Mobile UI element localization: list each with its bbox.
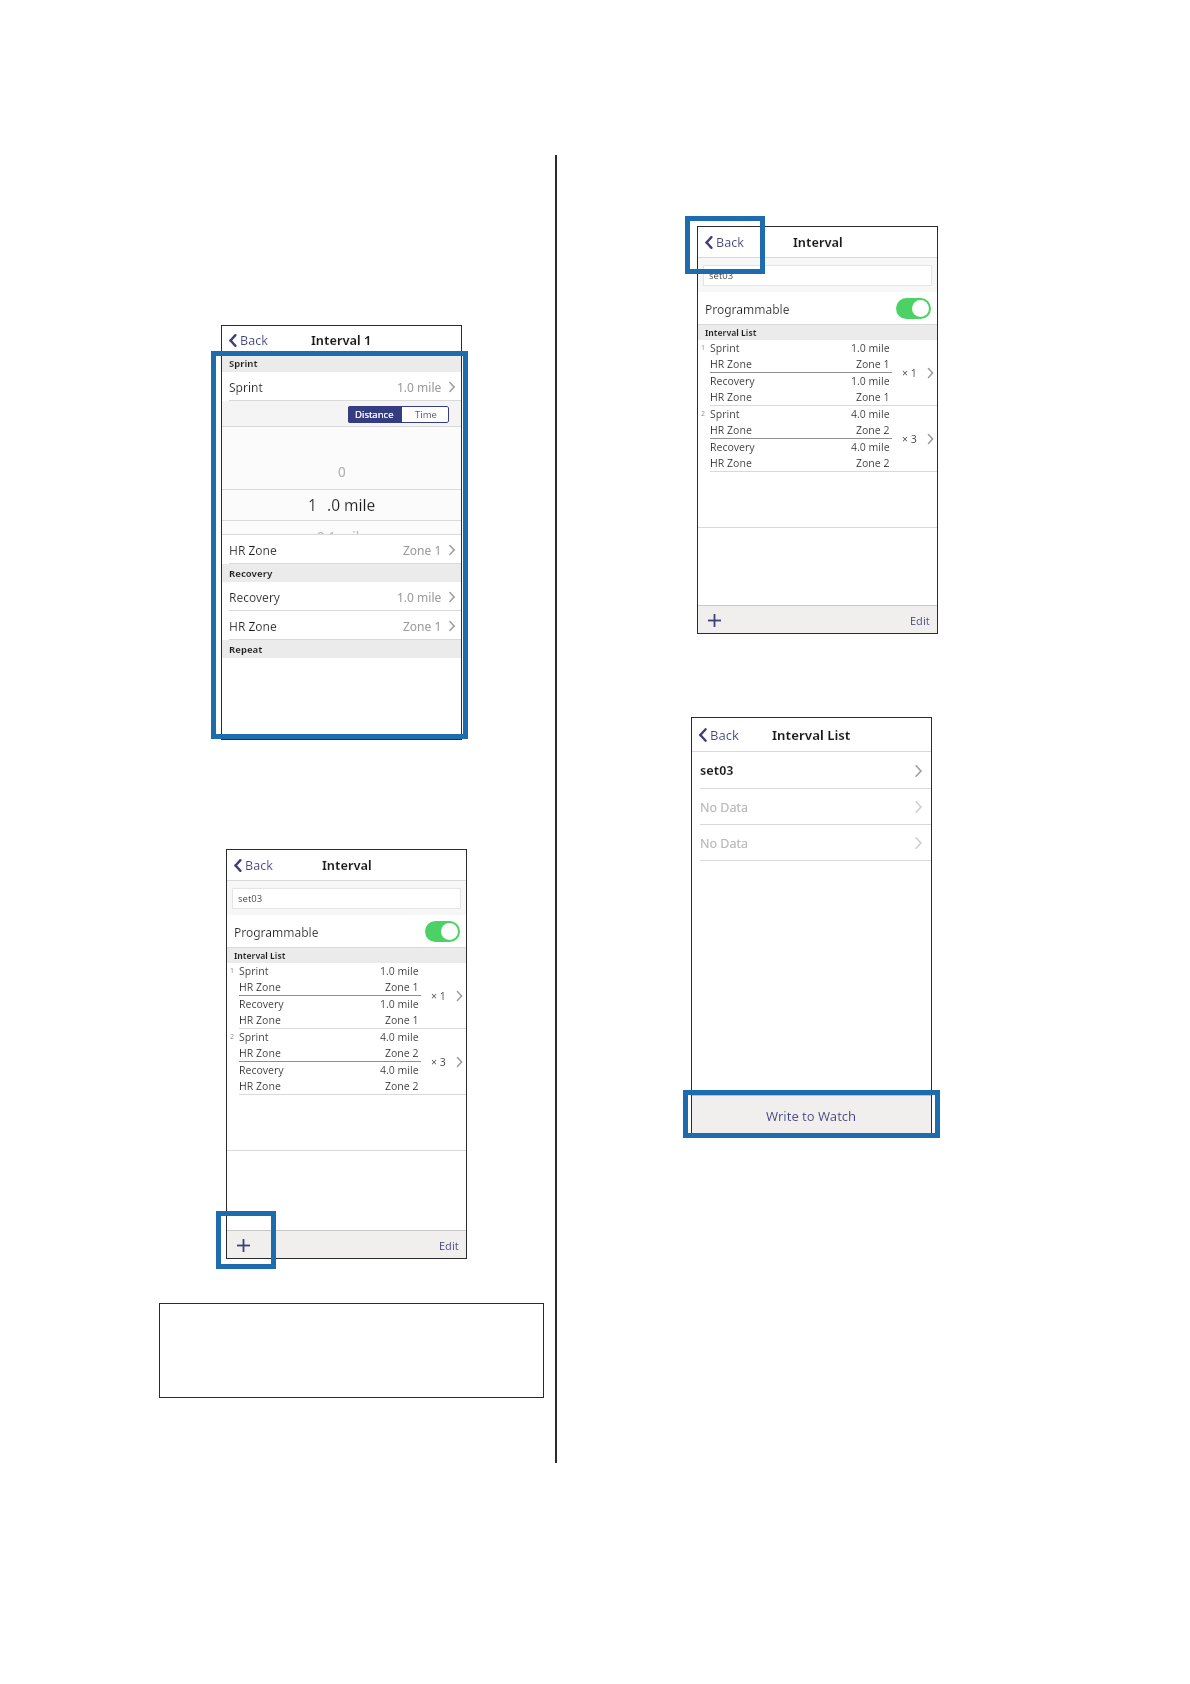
button[interactable]: set03 [232, 888, 461, 909]
staticText: HR Zone [239, 980, 281, 994]
button[interactable]: Add interval [703, 609, 725, 631]
staticText: Zone 1 [403, 618, 442, 634]
staticText: 1 [701, 343, 706, 353]
staticText: Zone 1 [856, 357, 890, 371]
staticText: Edit [910, 613, 930, 628]
button[interactable]: Edit [431, 1233, 467, 1258]
button[interactable]: set03 [703, 265, 932, 286]
staticText: 2.1 mile [317, 528, 367, 535]
staticText: set03 [700, 762, 734, 779]
staticText: 4.0 mile [380, 1030, 419, 1044]
staticText: × 1 [431, 989, 446, 1003]
staticText: HR Zone [229, 618, 277, 634]
staticText: 4.0 mile [851, 407, 890, 421]
button[interactable]: Edit [902, 608, 938, 633]
staticText: 1.0 mile [380, 997, 419, 1011]
staticText: Recovery [229, 589, 280, 605]
button[interactable]: Sprint [221, 372, 462, 401]
button[interactable]: Recovery [221, 582, 462, 611]
staticText: Back [240, 332, 268, 349]
button[interactable]: Back [226, 327, 271, 354]
staticText: 4.0 mile [851, 440, 890, 454]
staticText: Edit [439, 1238, 459, 1253]
staticText: Time [415, 408, 437, 421]
button[interactable]: 1 [697, 340, 938, 405]
staticText: 4.0 mile [380, 1063, 419, 1077]
staticText: Sprint [239, 964, 269, 978]
staticText: 1.0 mile [851, 374, 890, 388]
staticText: Interval List [772, 726, 851, 744]
button[interactable]: Time [402, 406, 449, 423]
staticText: × 3 [902, 432, 917, 446]
button[interactable]: set03 [691, 752, 932, 789]
staticText: Sprint [710, 407, 740, 421]
staticText: Recovery [710, 440, 755, 454]
staticText: Zone 2 [856, 456, 890, 470]
button[interactable]: 1 [226, 963, 467, 1028]
staticText: 0 [338, 463, 346, 481]
staticText: No Data [700, 835, 748, 852]
staticText: .0 mile [327, 494, 376, 515]
staticText: Interval List [234, 950, 286, 962]
staticText: No Data [700, 799, 748, 816]
staticText: Repeat [229, 643, 263, 656]
button[interactable]: No Data [691, 789, 932, 825]
staticText: Interval List [705, 327, 757, 339]
staticText: 1.0 mile [851, 341, 890, 355]
staticText: Recovery [239, 997, 284, 1011]
button[interactable]: Programmable toggle [425, 921, 460, 942]
staticText: Recovery [229, 567, 273, 580]
button[interactable]: Programmable toggle [896, 298, 931, 319]
staticText: Programmable [705, 301, 790, 317]
staticText: Zone 1 [385, 1013, 419, 1027]
button[interactable]: Back [696, 721, 742, 749]
staticText: Back [716, 234, 744, 251]
button[interactable]: 2 [226, 1029, 467, 1094]
staticText: HR Zone [710, 423, 752, 437]
staticText: Back [710, 726, 739, 744]
staticText: Interval [322, 857, 372, 874]
staticText: 2 [701, 409, 706, 419]
staticText: HR Zone [710, 456, 752, 470]
staticText: Programmable [234, 924, 319, 940]
staticText: Zone 2 [385, 1079, 419, 1093]
staticText: Recovery [710, 374, 755, 388]
button[interactable]: Add interval [232, 1234, 254, 1256]
button[interactable]: Distance [348, 406, 401, 423]
staticText: Zone 1 [385, 980, 419, 994]
staticText: Back [245, 857, 273, 874]
button[interactable]: Back [702, 229, 747, 256]
staticText: Zone 2 [856, 423, 890, 437]
staticText: Zone 1 [403, 542, 442, 558]
staticText: 1.0 mile [397, 589, 442, 605]
staticText: HR Zone [710, 357, 752, 371]
staticText: × 3 [431, 1055, 446, 1069]
staticText: 2 [230, 1032, 235, 1042]
button[interactable]: HR Zone [221, 611, 462, 640]
staticText: Interval 1 [311, 332, 372, 349]
staticText: HR Zone [239, 1079, 281, 1093]
staticText: HR Zone [229, 542, 277, 558]
button[interactable]: HR Zone [221, 535, 462, 564]
staticText: Write to Watch [766, 1107, 857, 1125]
staticText: 1 [230, 966, 235, 976]
staticText: HR Zone [710, 390, 752, 404]
staticText: Sprint [229, 379, 263, 395]
button[interactable]: Back [231, 852, 276, 879]
staticText: Sprint [229, 357, 258, 370]
button[interactable]: 2 [697, 406, 938, 471]
button[interactable]: No Data [691, 825, 932, 861]
staticText: Sprint [239, 1030, 269, 1044]
staticText: set03 [709, 269, 734, 282]
staticText: Interval [793, 234, 843, 251]
staticText: × 1 [902, 366, 917, 380]
staticText: HR Zone [239, 1046, 281, 1060]
staticText: set03 [238, 892, 263, 905]
staticText: Zone 1 [856, 390, 890, 404]
staticText: 1 [308, 494, 317, 515]
staticText: Recovery [239, 1063, 284, 1077]
staticText: Zone 2 [385, 1046, 419, 1060]
staticText: 1.0 mile [397, 379, 442, 395]
staticText: Distance [355, 408, 394, 421]
button[interactable]: Write to Watch [691, 1096, 932, 1135]
